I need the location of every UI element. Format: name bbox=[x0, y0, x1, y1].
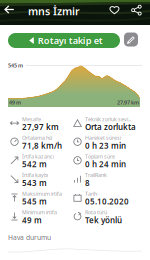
staticText: 27,97 km bbox=[117, 99, 139, 106]
staticText: Tek yönlü bbox=[85, 215, 122, 225]
staticText: 05.10.2020 bbox=[85, 196, 129, 207]
staticText: Maksimum irtifa bbox=[22, 190, 62, 197]
staticText: Rotayı takip et bbox=[38, 34, 103, 47]
button[interactable]: Add to favourites bbox=[106, 3, 123, 17]
staticText: 545 m bbox=[8, 62, 23, 69]
staticText: 545 m bbox=[22, 196, 47, 207]
button[interactable]: Rotayı takip et bbox=[8, 33, 120, 48]
staticText: 0 h 23 min bbox=[85, 140, 126, 151]
staticText: Hareket süresi bbox=[85, 134, 121, 141]
staticText: 27,97 km bbox=[22, 122, 59, 132]
staticText: Toplam süre bbox=[85, 153, 115, 160]
button[interactable]: Share bbox=[128, 3, 145, 17]
staticText: Tarih bbox=[85, 190, 97, 197]
button[interactable]: Edit route bbox=[124, 32, 138, 46]
staticText: 8 bbox=[85, 177, 90, 188]
staticText: Minimum irtifa bbox=[22, 209, 57, 216]
staticText: 543 m bbox=[22, 177, 47, 188]
staticText: Orta zorlukta bbox=[85, 122, 136, 132]
staticText: 49 m bbox=[9, 99, 21, 106]
staticText: Teknik zorluk sevi... bbox=[85, 116, 131, 123]
staticText: İrtifa kazancı bbox=[22, 153, 54, 160]
staticText: 542 m bbox=[22, 159, 47, 169]
staticText: 0 h 24 min bbox=[85, 159, 126, 169]
staticText: mns İzmir bbox=[28, 4, 80, 18]
staticText: TrailRank bbox=[85, 171, 107, 178]
staticText: İrtifa kaybı bbox=[22, 171, 48, 178]
staticText: Mesafe bbox=[22, 116, 41, 123]
staticText: Ortalama hız bbox=[22, 134, 53, 141]
staticText: Hava durumu bbox=[8, 233, 51, 242]
staticText: 49 m bbox=[22, 215, 42, 225]
staticText: Rota türü bbox=[85, 209, 107, 216]
button[interactable]: Back bbox=[1, 2, 18, 17]
staticText: 71,8 km/h bbox=[22, 140, 62, 151]
